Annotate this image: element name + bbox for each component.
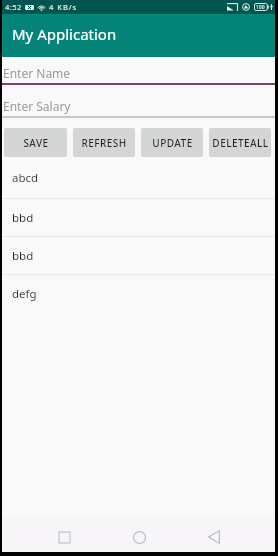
button[interactable]: Back <box>195 522 233 552</box>
staticText: 100 <box>256 4 265 11</box>
staticText: UPDATE <box>152 136 193 150</box>
staticText: DELETEALL <box>212 136 269 150</box>
staticText: SAVE <box>23 136 49 150</box>
button[interactable]: UPDATE <box>141 128 203 157</box>
staticText: abcd <box>12 170 39 186</box>
staticText: My Application <box>12 24 117 44</box>
staticText: bbd <box>12 248 34 264</box>
staticText: Enter Salary <box>3 98 71 114</box>
button[interactable]: bbd <box>2 237 275 274</box>
button[interactable]: SAVE <box>4 128 67 157</box>
staticText: bbd <box>12 210 34 226</box>
staticText: 4 KB/s <box>49 2 78 12</box>
staticText: 4:52 <box>5 2 22 12</box>
button[interactable]: bbd <box>2 199 275 236</box>
staticText: Enter Name <box>3 65 71 81</box>
button[interactable]: abcd <box>2 157 275 198</box>
button[interactable]: defg <box>2 275 275 312</box>
staticText: REFRESH <box>81 136 127 150</box>
button[interactable]: Recent apps <box>45 522 83 552</box>
button[interactable]: DELETEALL <box>209 128 271 157</box>
button[interactable]: REFRESH <box>73 128 135 157</box>
staticText: defg <box>12 286 37 302</box>
button[interactable]: Home <box>120 522 158 552</box>
